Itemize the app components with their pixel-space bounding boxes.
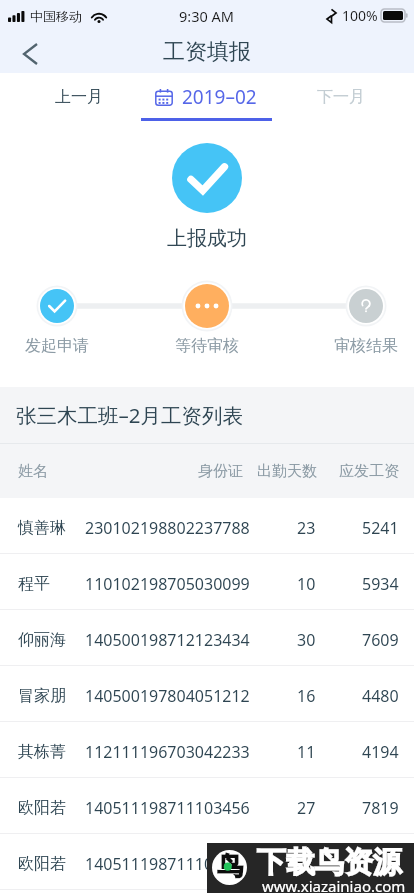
staticText: 程平 (18, 574, 50, 594)
staticText: 冒家朋 (18, 686, 66, 706)
staticText: 出勤天数 (257, 462, 317, 481)
button[interactable]: 上一月 (14, 73, 144, 121)
button[interactable]: 下一月 (276, 73, 406, 121)
button[interactable]: Back (0, 33, 58, 73)
staticText: 9:30 AM (179, 6, 234, 26)
staticText: 欧阳若 (18, 798, 66, 818)
staticText: 27 (297, 853, 316, 875)
button[interactable]: 发起申请 (40, 289, 74, 323)
staticText: 发起申请 (25, 336, 89, 356)
staticText: 4194 (362, 741, 399, 763)
staticText: 身份证 (198, 462, 243, 481)
staticText: 工资填报 (163, 38, 251, 66)
staticText: 140511198711103456 (85, 853, 250, 875)
staticText: 11 (297, 741, 316, 763)
staticText: 中国移动 (30, 8, 82, 24)
button[interactable]: 慎善琳 (0, 498, 414, 553)
staticText: 5934 (362, 573, 399, 595)
button[interactable]: 等待审核 (185, 284, 229, 328)
button[interactable]: 欧阳若 (0, 834, 414, 889)
button[interactable]: 2019–02 (141, 73, 272, 121)
staticText: www.xiazainiao.com (262, 876, 406, 896)
staticText: 鸟 (217, 850, 243, 883)
button[interactable]: 仰丽海 (0, 610, 414, 665)
staticText: 张三木工班–2月工资列表 (16, 401, 243, 429)
staticText: 5241 (362, 517, 399, 539)
staticText: 仰丽海 (18, 630, 66, 650)
staticText: 27 (297, 797, 316, 819)
staticText: 7609 (362, 629, 399, 651)
button[interactable]: 审核结果 (349, 289, 383, 323)
staticText: 2019–02 (182, 84, 257, 110)
staticText: 140500197804051212 (85, 685, 250, 707)
staticText: 上报成功 (167, 226, 247, 251)
staticText: 10 (297, 573, 316, 595)
staticText: 230102198802237788 (85, 517, 250, 539)
button[interactable]: 欧阳若 (0, 778, 414, 833)
staticText: 4480 (362, 685, 399, 707)
staticText: 欧阳若 (18, 854, 66, 874)
staticText: 110102198705030099 (85, 573, 250, 595)
staticText: 140511198711103456 (85, 797, 250, 819)
staticText: 7819 (362, 853, 399, 875)
staticText: 23 (297, 517, 316, 539)
staticText: 7819 (362, 797, 399, 819)
staticText: 112111196703042233 (85, 741, 250, 763)
staticText: 下一月 (317, 87, 365, 107)
staticText: 其栋菁 (18, 742, 66, 762)
staticText: 审核结果 (334, 336, 398, 356)
staticText: 上一月 (55, 87, 103, 107)
button[interactable]: 程平 (0, 554, 414, 609)
staticText: 应发工资 (339, 462, 399, 481)
staticText: 30 (297, 629, 316, 651)
button[interactable]: 其栋菁 (0, 722, 414, 777)
button[interactable]: 冒家朋 (0, 666, 414, 721)
staticText: 姓名 (18, 462, 48, 481)
staticText: 下载鸟资源 (257, 844, 402, 881)
staticText: 100% (342, 6, 378, 25)
staticText: 等待审核 (175, 336, 239, 356)
staticText: 140500198712123434 (85, 629, 250, 651)
staticText: 慎善琳 (18, 518, 66, 538)
staticText: 16 (297, 685, 316, 707)
